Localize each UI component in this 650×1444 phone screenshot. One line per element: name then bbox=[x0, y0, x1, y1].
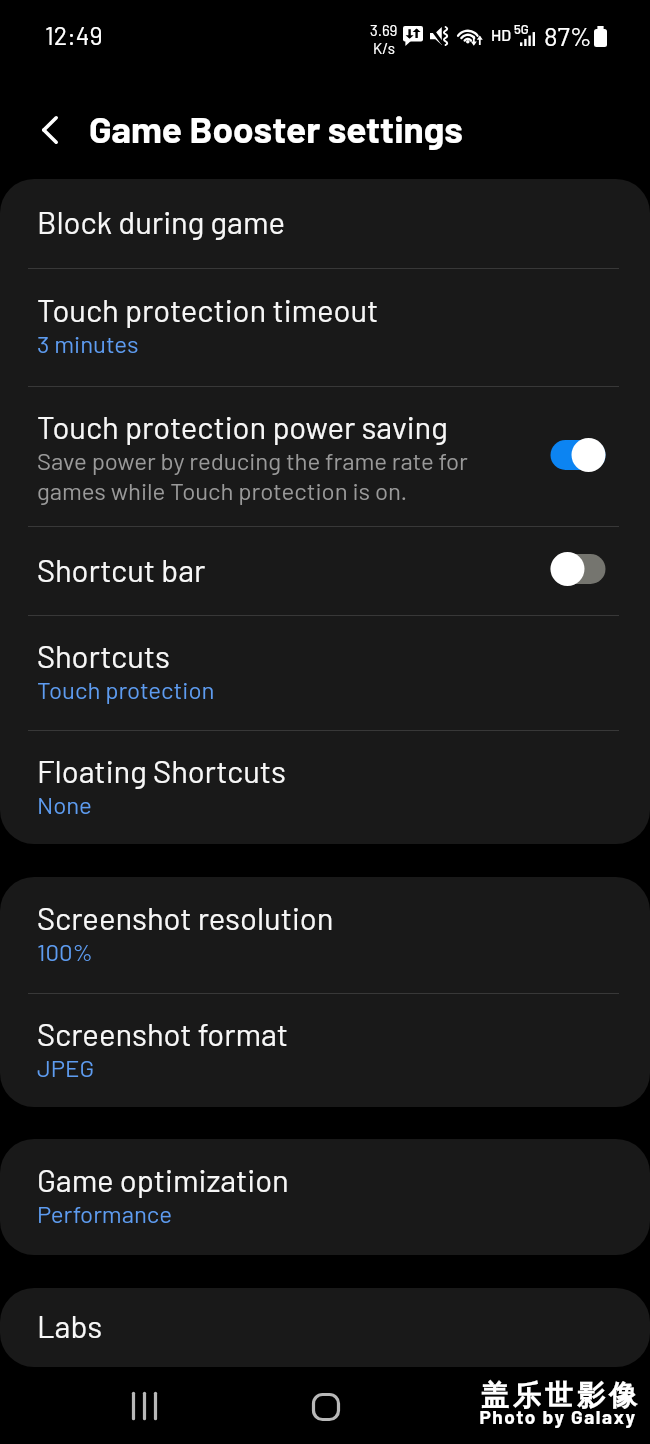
button[interactable]: Screenshot resolution bbox=[0, 877, 650, 993]
staticText: Screenshot format bbox=[37, 1015, 289, 1052]
button[interactable]: Shortcuts bbox=[0, 616, 650, 730]
staticText: JPEG bbox=[37, 1053, 95, 1082]
staticText: Screenshot resolution bbox=[37, 899, 334, 936]
staticText: 5G bbox=[514, 21, 529, 37]
staticText: 盖乐世影像 bbox=[479, 1378, 639, 1413]
staticText: Save power by reducing the frame rate fo… bbox=[37, 446, 468, 505]
button[interactable]: Back bbox=[25, 105, 75, 155]
button[interactable]: Game optimization bbox=[0, 1139, 650, 1255]
button[interactable]: Labs bbox=[0, 1288, 650, 1367]
staticText: 3.69 bbox=[370, 21, 398, 39]
button[interactable]: Recent apps bbox=[113, 1374, 177, 1438]
button[interactable]: Toggle off bbox=[549, 549, 607, 589]
staticText: Shortcuts bbox=[37, 637, 170, 674]
staticText: Floating Shortcuts bbox=[37, 752, 286, 789]
staticText: Game Booster settings bbox=[89, 106, 463, 150]
staticText: Touch protection timeout bbox=[37, 291, 379, 328]
button[interactable]: Touch protection timeout bbox=[0, 269, 650, 386]
button[interactable]: Screenshot format bbox=[0, 994, 650, 1107]
staticText: 12:49 bbox=[45, 20, 103, 50]
staticText: Photo by Galaxy bbox=[479, 1405, 637, 1428]
staticText: Game optimization bbox=[37, 1161, 289, 1198]
staticText: Touch protection power saving bbox=[37, 408, 448, 445]
staticText: 100% bbox=[37, 937, 93, 966]
staticText: Block during game bbox=[37, 203, 285, 240]
button[interactable]: Block during game bbox=[0, 179, 650, 268]
staticText: Labs bbox=[37, 1307, 103, 1344]
staticText: HD bbox=[491, 25, 512, 44]
button[interactable]: Home bbox=[294, 1375, 358, 1439]
button[interactable]: Toggle on bbox=[549, 435, 607, 475]
button[interactable]: Touch protection power saving bbox=[0, 387, 650, 526]
staticText: Shortcut bar bbox=[37, 551, 206, 588]
button[interactable]: Shortcut bar bbox=[0, 527, 650, 615]
staticText: K/s bbox=[373, 39, 396, 57]
staticText: 87% bbox=[544, 20, 592, 51]
staticText: Touch protection bbox=[37, 675, 215, 704]
button[interactable]: Floating Shortcuts bbox=[0, 731, 650, 844]
staticText: 3 minutes bbox=[37, 329, 139, 358]
staticText: None bbox=[37, 790, 92, 819]
staticText: Performance bbox=[37, 1199, 172, 1228]
